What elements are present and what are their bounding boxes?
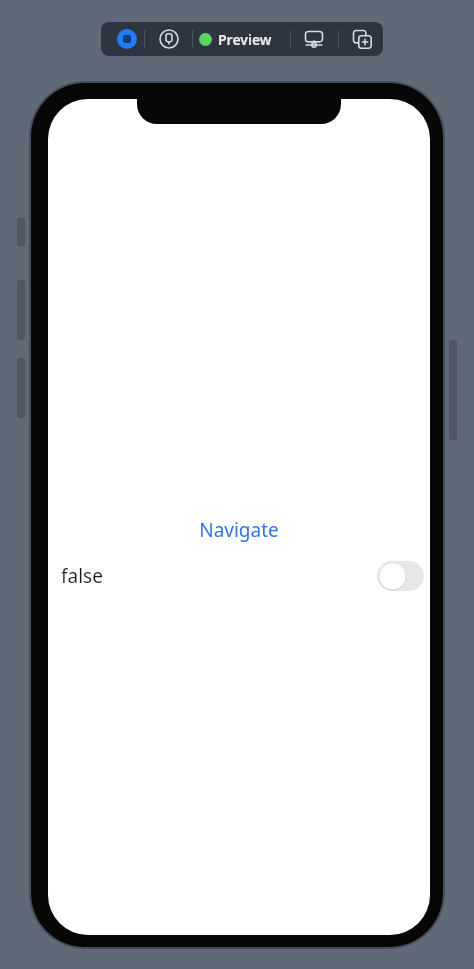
button[interactable]: Preview on Mac <box>297 22 331 56</box>
staticText: false <box>61 563 103 589</box>
button[interactable]: Navigate <box>48 517 430 543</box>
button[interactable]: false <box>61 543 424 609</box>
button[interactable]: Device settings <box>152 22 186 56</box>
button[interactable]: Preview <box>199 22 272 56</box>
staticText: Preview <box>218 30 272 49</box>
button[interactable]: Add preview <box>345 22 379 56</box>
button[interactable]: Stop preview <box>110 22 144 56</box>
staticText: Navigate <box>199 517 279 543</box>
button[interactable]: Toggle <box>377 561 424 591</box>
